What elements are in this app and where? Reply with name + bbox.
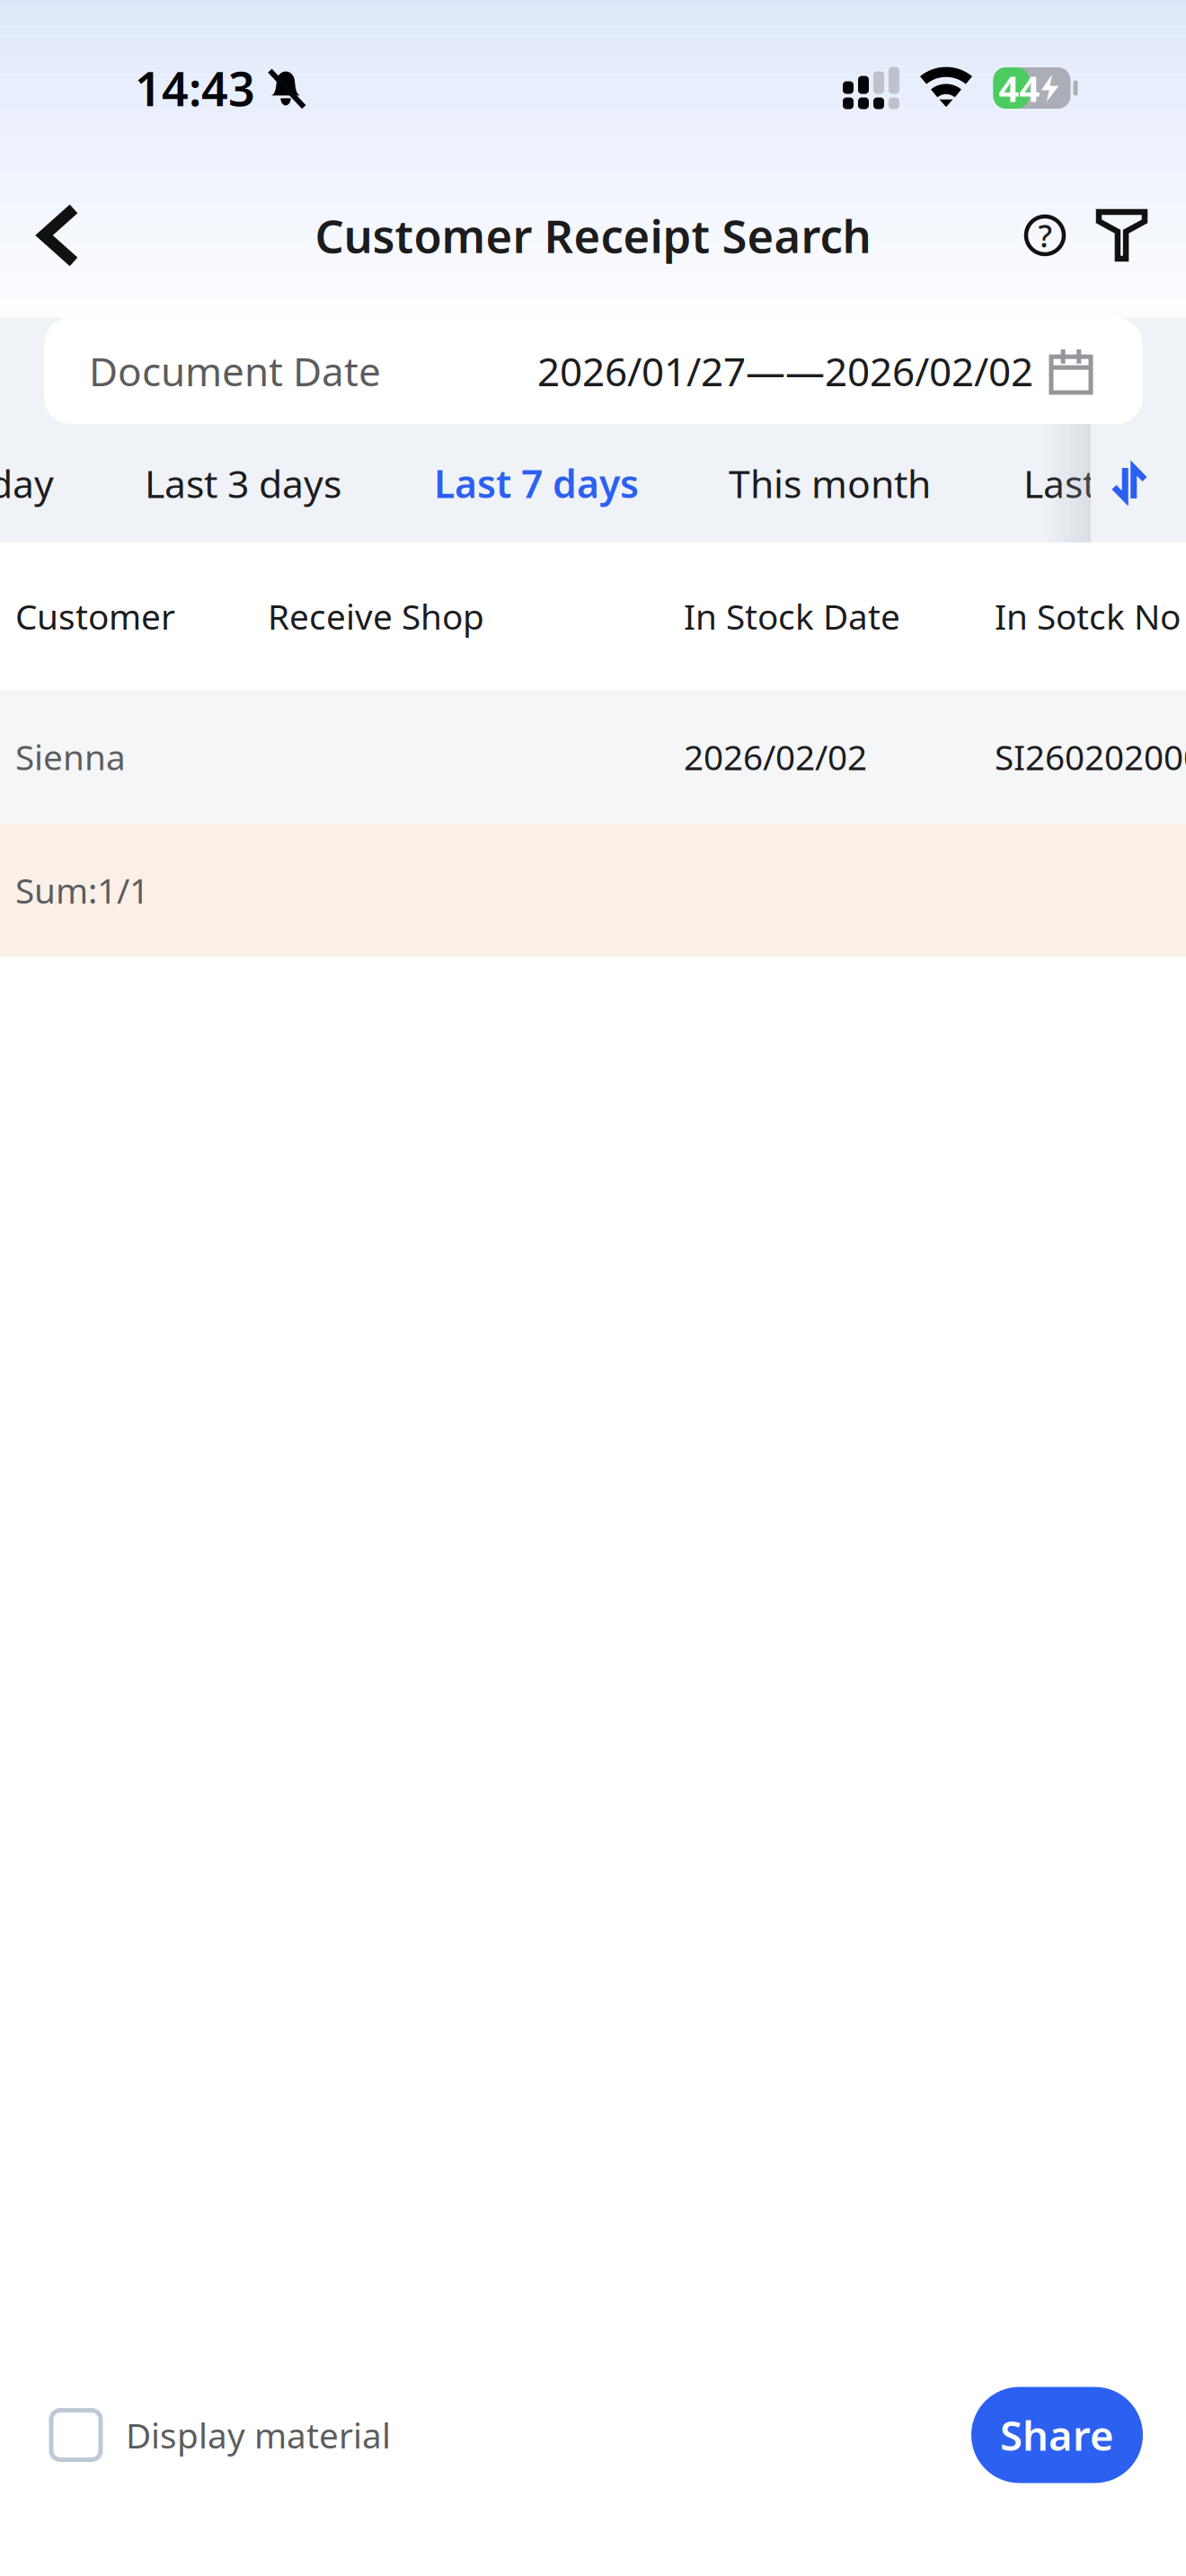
button[interactable]: Sienna (0, 690, 1186, 824)
staticText: In Stock Date (684, 593, 900, 639)
staticText: day (0, 458, 54, 509)
button[interactable]: Help (999, 176, 1074, 295)
staticText: Last (1023, 458, 1096, 509)
staticText: 14:43 (135, 57, 255, 119)
staticText: Receive Shop (268, 593, 484, 639)
staticText: 2026/02/02 (684, 734, 867, 780)
button[interactable]: Filter (1079, 176, 1164, 295)
staticText: Sum:1/1 (15, 867, 149, 913)
staticText: Document Date (89, 345, 381, 397)
staticText: 2026/01/27——2026/02/02 (537, 345, 1033, 397)
button[interactable]: Share (971, 2387, 1143, 2483)
staticText: ? (1038, 215, 1052, 256)
staticText: SI260202000 (995, 734, 1186, 780)
button[interactable]: Display material (51, 2392, 391, 2478)
staticText: Customer Receipt Search (315, 205, 871, 266)
staticText: This month (729, 458, 931, 509)
staticText: Share (1000, 2408, 1114, 2462)
staticText: Customer (15, 593, 175, 639)
staticText: Last 3 days (145, 458, 341, 509)
button[interactable]: Back (0, 176, 104, 295)
button[interactable]: Sort (1091, 424, 1186, 543)
staticText: Last 7 days (434, 458, 639, 509)
button[interactable]: Document Date (0, 318, 1186, 424)
staticText: In Sotck No (995, 593, 1181, 639)
staticText: 44 (999, 64, 1040, 112)
staticText: Display material (126, 2412, 391, 2458)
staticText: Sienna (15, 734, 126, 780)
